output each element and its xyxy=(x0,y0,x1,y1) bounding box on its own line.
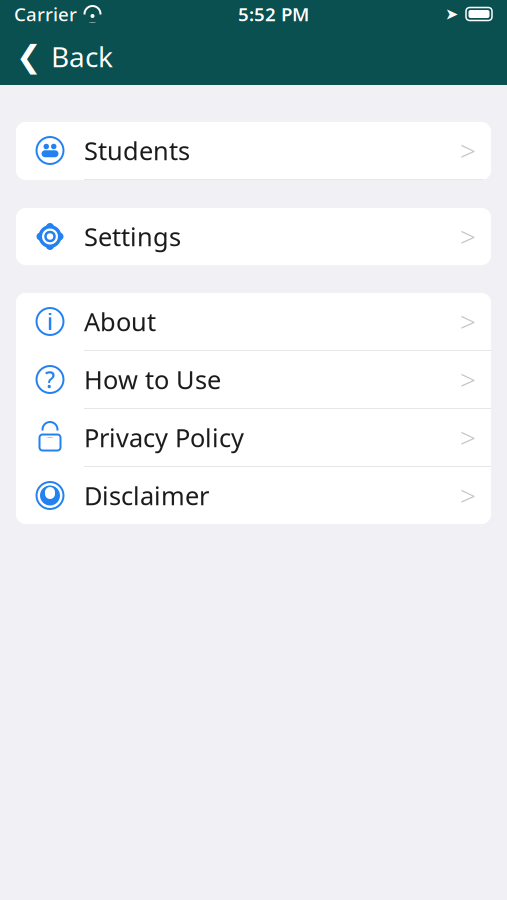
button[interactable]: i xyxy=(16,293,491,350)
staticText: How to Use xyxy=(84,363,221,396)
staticText: Students xyxy=(84,134,190,167)
staticText: ? xyxy=(45,364,55,394)
staticText: About xyxy=(84,305,156,338)
staticText: > xyxy=(460,477,476,514)
staticText: > xyxy=(460,419,476,456)
staticText: Privacy Policy xyxy=(84,421,244,454)
staticText: ➤ xyxy=(445,5,458,23)
button[interactable]: Privacy Policy xyxy=(16,409,491,466)
button[interactable]: ? xyxy=(16,351,491,408)
button[interactable]: Students xyxy=(16,122,491,179)
button[interactable]: ❮ xyxy=(0,28,127,85)
staticText: ❮ xyxy=(16,39,42,74)
staticText: > xyxy=(460,218,476,255)
staticText: Carrier xyxy=(14,2,77,26)
staticText: > xyxy=(460,132,476,169)
button[interactable]: Disclaimer xyxy=(16,467,491,524)
staticText: Settings xyxy=(84,220,181,253)
staticText: 5:52 PM xyxy=(238,2,309,26)
staticText: > xyxy=(460,361,476,398)
staticText: > xyxy=(460,303,476,340)
staticText: Disclaimer xyxy=(84,479,209,512)
staticText: i xyxy=(47,306,53,336)
button[interactable]: Settings xyxy=(16,208,491,265)
staticText: Back xyxy=(51,38,113,75)
